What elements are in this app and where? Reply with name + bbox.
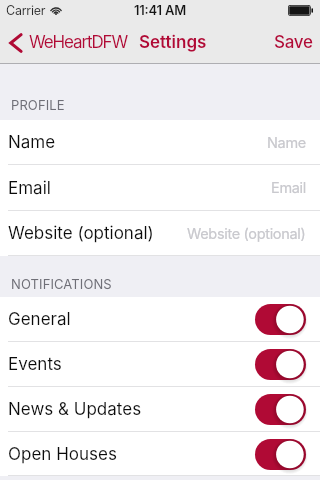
staticText: Carrier: [6, 3, 46, 18]
button[interactable]: Open Houses notifications toggle, on: [255, 439, 306, 470]
button[interactable]: General notifications toggle, on: [255, 304, 306, 335]
button[interactable]: Email: [0, 165, 320, 211]
staticText: WeHeartDFW: [29, 32, 128, 53]
staticText: Open Houses: [8, 444, 117, 465]
staticText: Name: [8, 132, 56, 153]
staticText: Email: [8, 178, 51, 199]
staticText: Save: [274, 32, 313, 53]
button[interactable]: Save: [267, 23, 320, 62]
staticText: Website (optional): [8, 223, 154, 244]
staticText: NOTIFICATIONS: [11, 276, 112, 292]
staticText: PROFILE: [11, 97, 65, 113]
button[interactable]: Website (optional): [0, 211, 320, 256]
other: Back to WeHeartDFW: [9, 33, 22, 53]
staticText: News & Updates: [8, 399, 142, 420]
staticText: Events: [8, 354, 62, 375]
button[interactable]: Events: [0, 342, 320, 387]
staticText: Email: [271, 179, 306, 197]
button[interactable]: Events notifications toggle, on: [255, 349, 306, 380]
button[interactable]: General: [0, 297, 320, 342]
button[interactable]: Name: [0, 120, 320, 165]
button[interactable]: News & Updates: [0, 387, 320, 432]
staticText: 11:41 AM: [134, 2, 187, 18]
button[interactable]: News & Updates notifications toggle, on: [255, 394, 306, 425]
staticText: Settings: [139, 32, 207, 53]
staticText: General: [8, 309, 71, 330]
button[interactable]: Open Houses: [0, 432, 320, 476]
staticText: Name: [267, 134, 306, 152]
staticText: Website (optional): [187, 225, 306, 243]
button[interactable]: Back to WeHeartDFW: [0, 27, 134, 58]
